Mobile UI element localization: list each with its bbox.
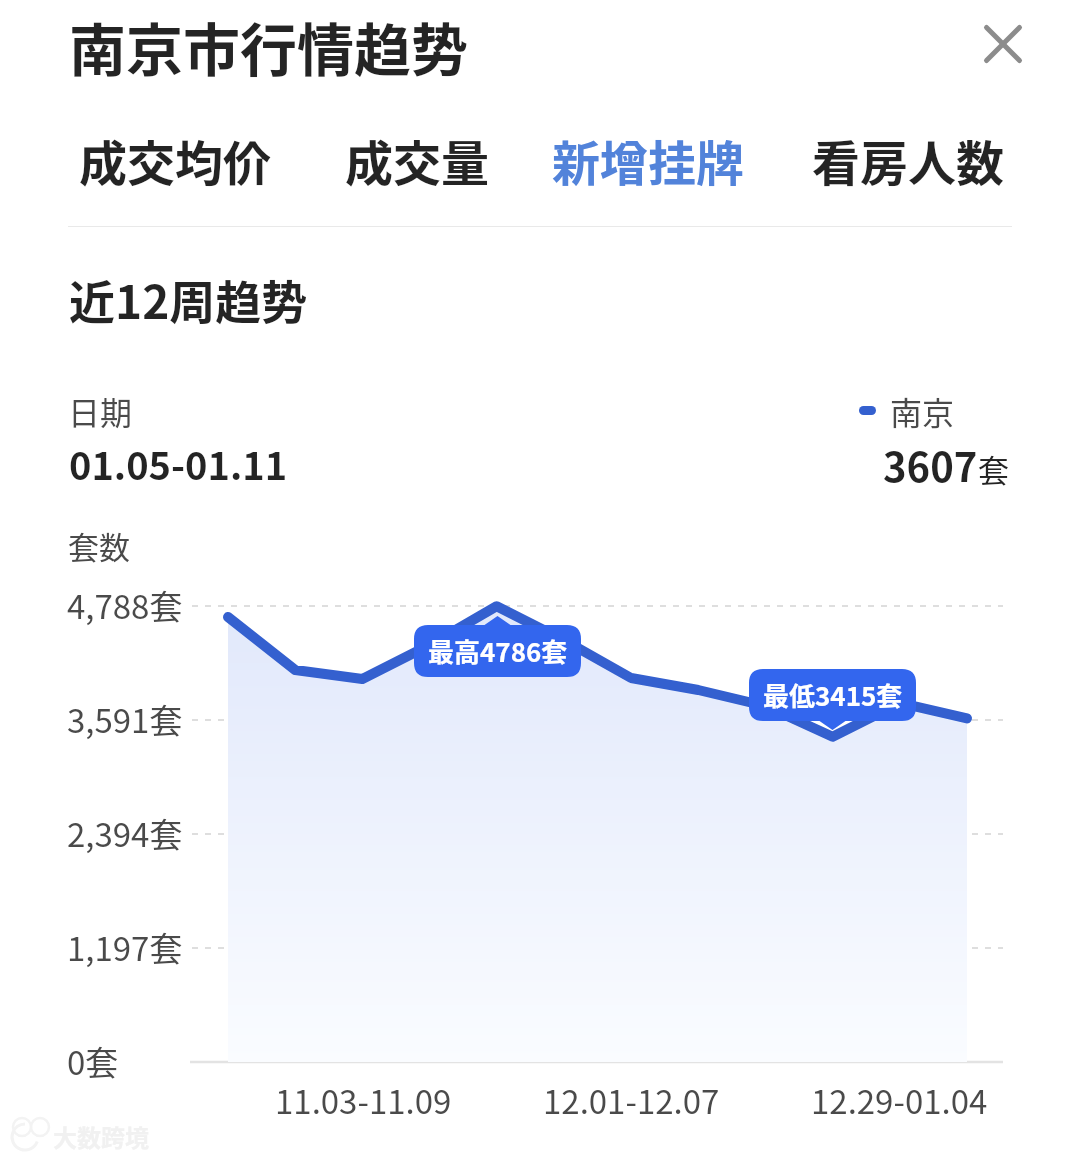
staticText: 0套 [67,1037,119,1085]
button[interactable]: 新增挂牌 [540,120,756,200]
staticText: 最高4786套 [428,632,568,670]
button[interactable]: 成交均价 [67,120,283,200]
staticText: 12.29-01.04 [811,1076,988,1124]
staticText: 4,788套 [67,581,183,629]
staticText: 12.01-12.07 [543,1076,720,1124]
staticText: 近12周趋势 [69,266,308,333]
button[interactable]: Close [963,4,1043,84]
staticText: 套数 [68,523,130,568]
button[interactable]: 看房人数 [800,120,1016,200]
staticText: 最低3415套 [763,676,903,714]
staticText: 南京 [890,388,955,434]
staticText: 新增挂牌 [552,125,745,195]
button[interactable]: 最高4786套 [414,625,581,677]
staticText: 南京市行情趋势 [69,5,468,88]
button[interactable]: 最低3415套 [749,669,916,721]
button[interactable]: 成交量 [333,120,501,200]
staticText: 成交均价 [79,125,272,195]
staticText: 成交量 [345,125,490,195]
staticText: 2,394套 [67,809,183,857]
staticText: 1,197套 [67,923,183,971]
staticText: 3607 [883,436,978,494]
staticText: 看房人数 [812,125,1005,195]
staticText: 大数跨境 [53,1119,149,1154]
staticText: 01.05-01.11 [69,436,288,491]
staticText: 套 [978,446,1009,491]
staticText: 11.03-11.09 [275,1076,452,1124]
staticText: 3,591套 [67,695,183,743]
staticText: 日期 [68,388,133,434]
